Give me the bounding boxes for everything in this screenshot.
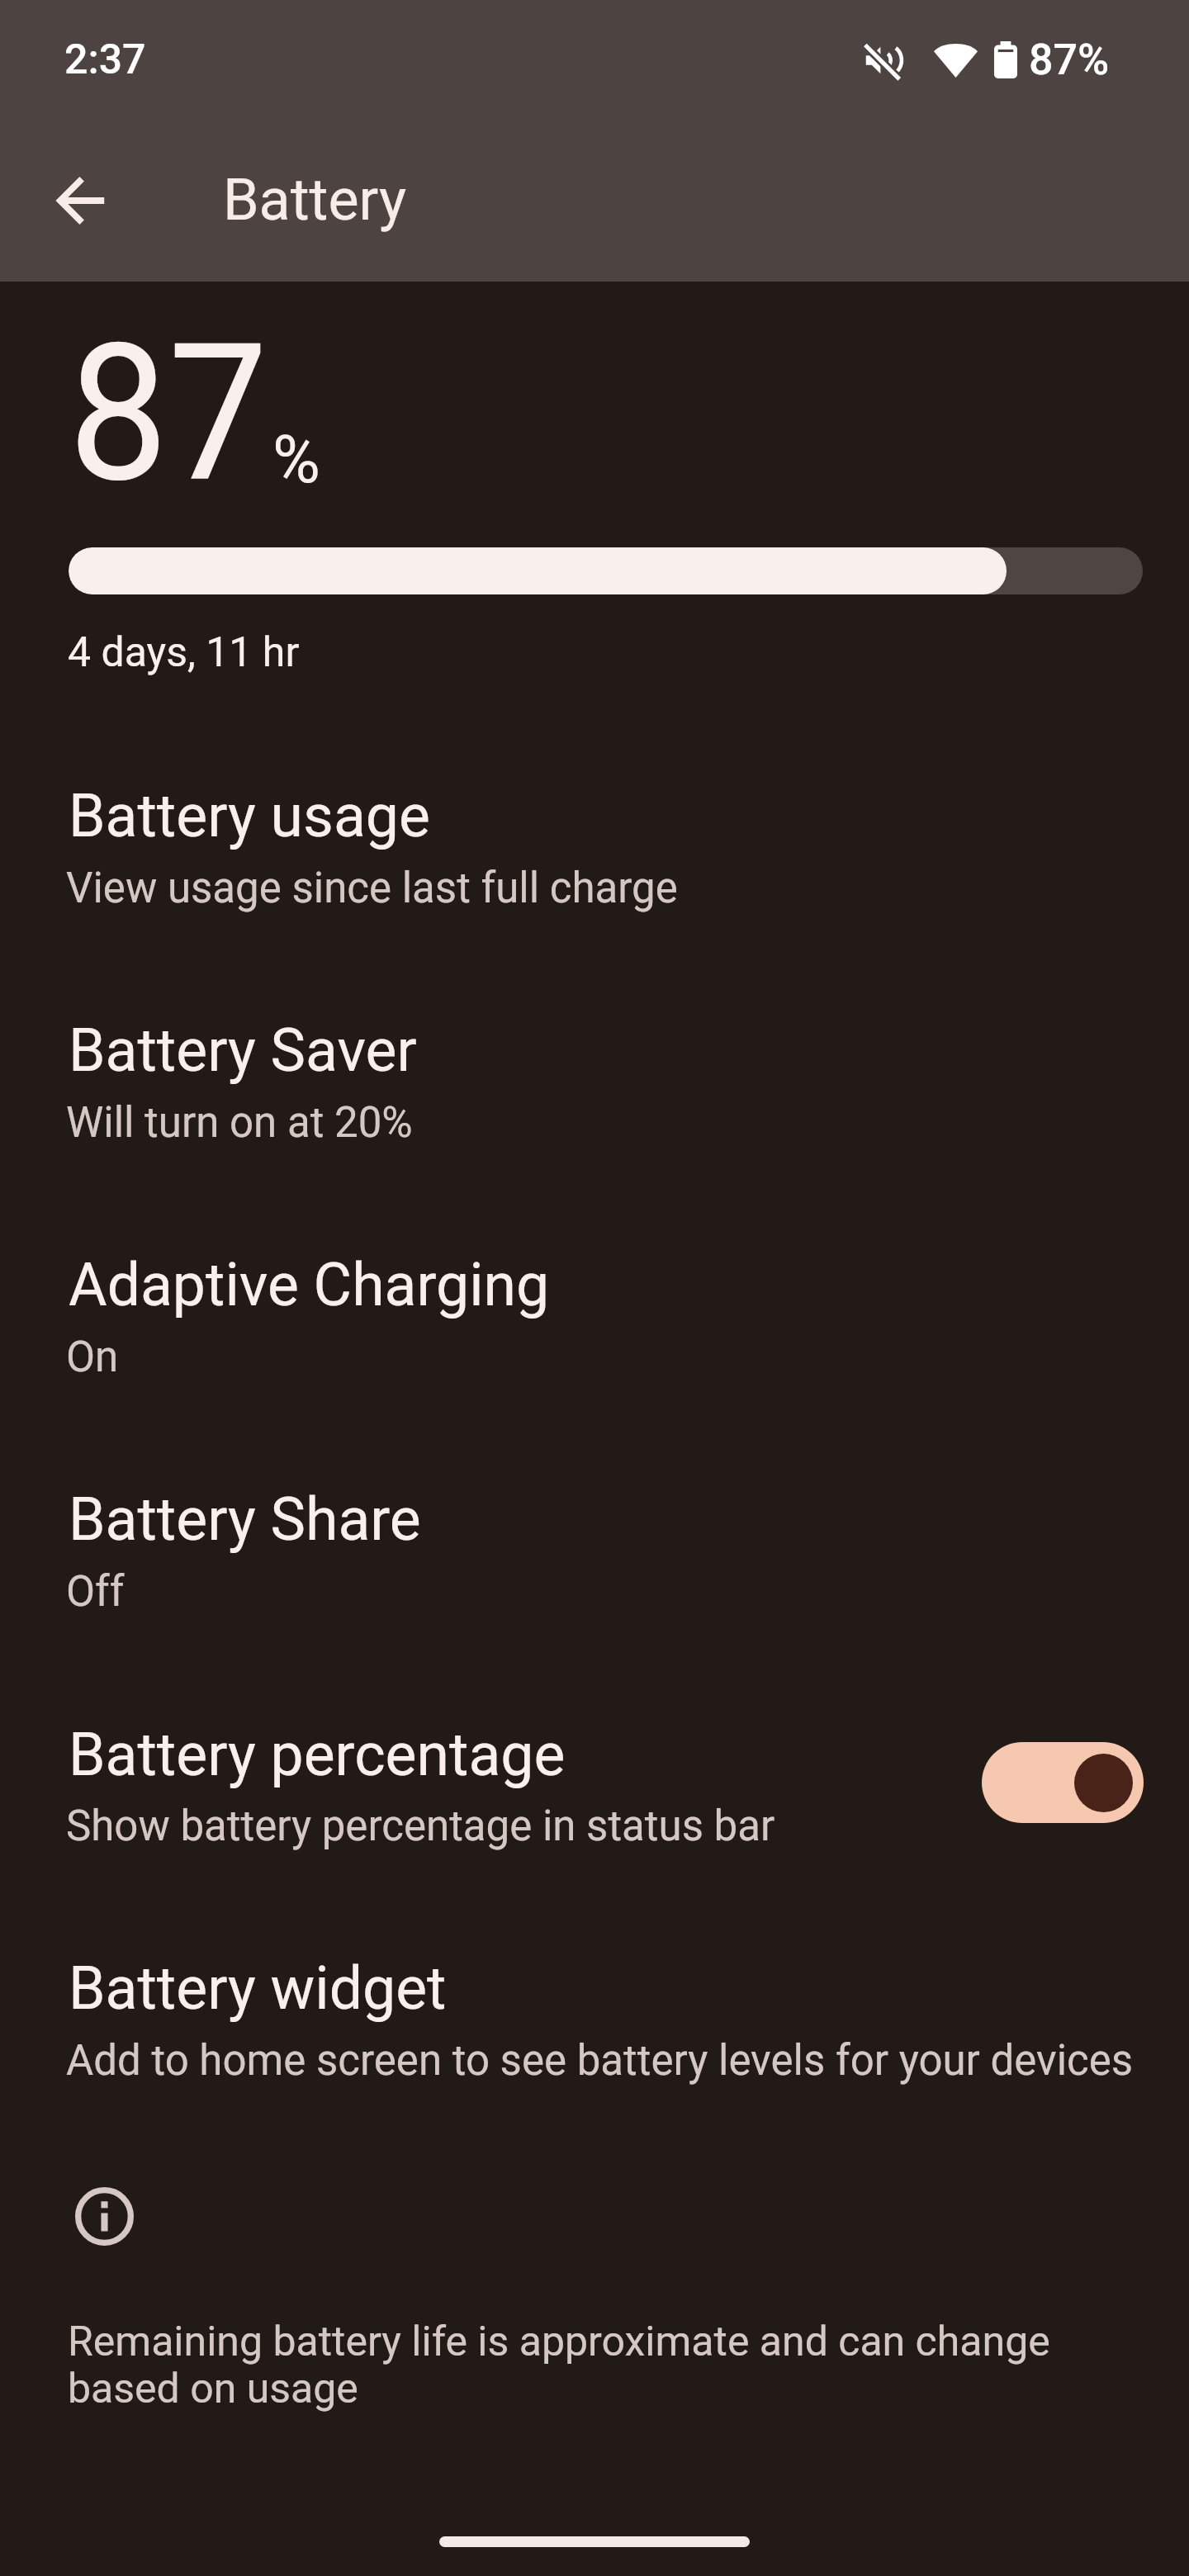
staticText: On [66, 1333, 119, 1382]
staticText: 2:37 [64, 36, 146, 84]
staticText: Show battery percentage in status bar [66, 1802, 775, 1851]
button[interactable]: Adaptive Charging [0, 1208, 1189, 1406]
staticText: Battery [223, 166, 407, 234]
staticText: Remaining battery life is approximate an… [68, 2318, 1133, 2413]
staticText: View usage since last full charge [66, 864, 678, 913]
button[interactable]: Battery widget [0, 1911, 1189, 2110]
staticText: Battery Saver [69, 1016, 417, 1086]
button[interactable]: Battery Share [0, 1442, 1189, 1641]
button[interactable]: Battery usage [0, 739, 1189, 937]
button[interactable]: Battery percentage toggle [982, 1742, 1144, 1823]
button[interactable]: Battery percentage [0, 1678, 1189, 1875]
staticText: % [272, 422, 320, 499]
staticText: Battery Share [69, 1485, 421, 1555]
staticText: Will turn on at 20% [66, 1098, 413, 1148]
staticText: 87% [1029, 35, 1110, 85]
staticText: Battery usage [69, 782, 430, 851]
staticText: Battery widget [69, 1954, 447, 2024]
staticText: 87 [69, 302, 268, 526]
button[interactable]: Battery Saver [0, 973, 1189, 1172]
staticText: 4 days, 11 hr [68, 628, 300, 677]
button[interactable]: Back [31, 151, 130, 250]
staticText: Off [66, 1567, 125, 1617]
staticText: Adaptive Charging [69, 1251, 550, 1320]
staticText: Add to home screen to see battery levels… [66, 2036, 1134, 2086]
staticText: Battery percentage [69, 1721, 566, 1790]
